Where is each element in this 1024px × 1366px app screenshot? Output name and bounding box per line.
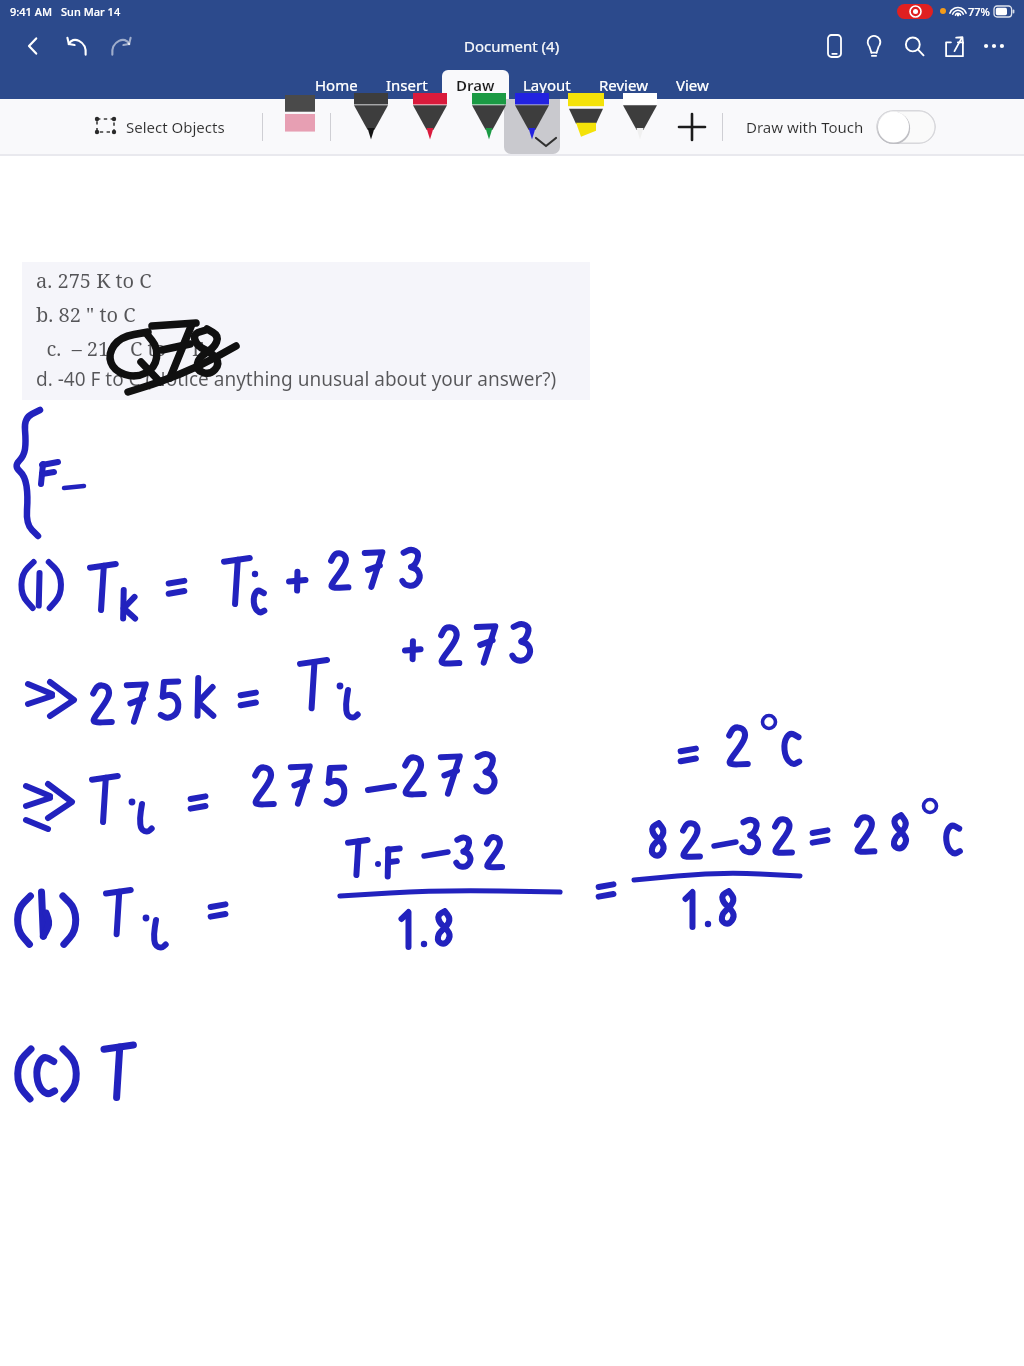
button[interactable]: Draw bbox=[442, 70, 509, 99]
button[interactable]: More options bbox=[974, 26, 1014, 66]
staticText: Document (4) bbox=[464, 36, 560, 56]
staticText: Review bbox=[599, 75, 648, 95]
staticText: 9:41 AM bbox=[10, 4, 53, 19]
button[interactable]: Layout bbox=[509, 70, 585, 99]
button[interactable]: Select Objects bbox=[95, 116, 225, 137]
staticText: 77% bbox=[968, 4, 990, 19]
staticText: Insert bbox=[386, 75, 428, 95]
staticText: Layout bbox=[523, 75, 571, 95]
staticText: d. -40 F to C (Notice anything unusual a… bbox=[36, 366, 557, 392]
staticText: Sun Mar 14 bbox=[61, 4, 121, 19]
button[interactable]: Add pen bbox=[672, 107, 712, 147]
button[interactable]: Search bbox=[894, 26, 934, 66]
button[interactable]: Insert bbox=[372, 70, 442, 99]
staticText: Draw bbox=[456, 75, 495, 95]
button[interactable]: Tell me bbox=[854, 26, 894, 66]
button[interactable]: Undo bbox=[58, 27, 96, 65]
button[interactable]: Draw with Touch bbox=[746, 110, 936, 144]
button[interactable]: Review bbox=[585, 70, 662, 99]
button[interactable]: Back bbox=[14, 27, 52, 65]
button[interactable]: View bbox=[662, 70, 723, 99]
button[interactable]: Share bbox=[934, 26, 974, 66]
button[interactable]: Redo bbox=[102, 27, 140, 65]
staticText: View bbox=[676, 75, 709, 95]
staticText: Draw with Touch bbox=[746, 117, 864, 137]
staticText: a. 275 K to C bbox=[36, 267, 152, 294]
button[interactable]: Home bbox=[301, 70, 372, 99]
button[interactable]: Blue pen selected bbox=[504, 99, 560, 154]
button[interactable]: Phone view bbox=[814, 26, 854, 66]
staticText: Home bbox=[315, 75, 358, 95]
staticText: Select Objects bbox=[126, 117, 225, 137]
staticText: c. – 21 C to F bbox=[36, 335, 204, 362]
staticText: b. 82 " to C bbox=[36, 301, 136, 328]
